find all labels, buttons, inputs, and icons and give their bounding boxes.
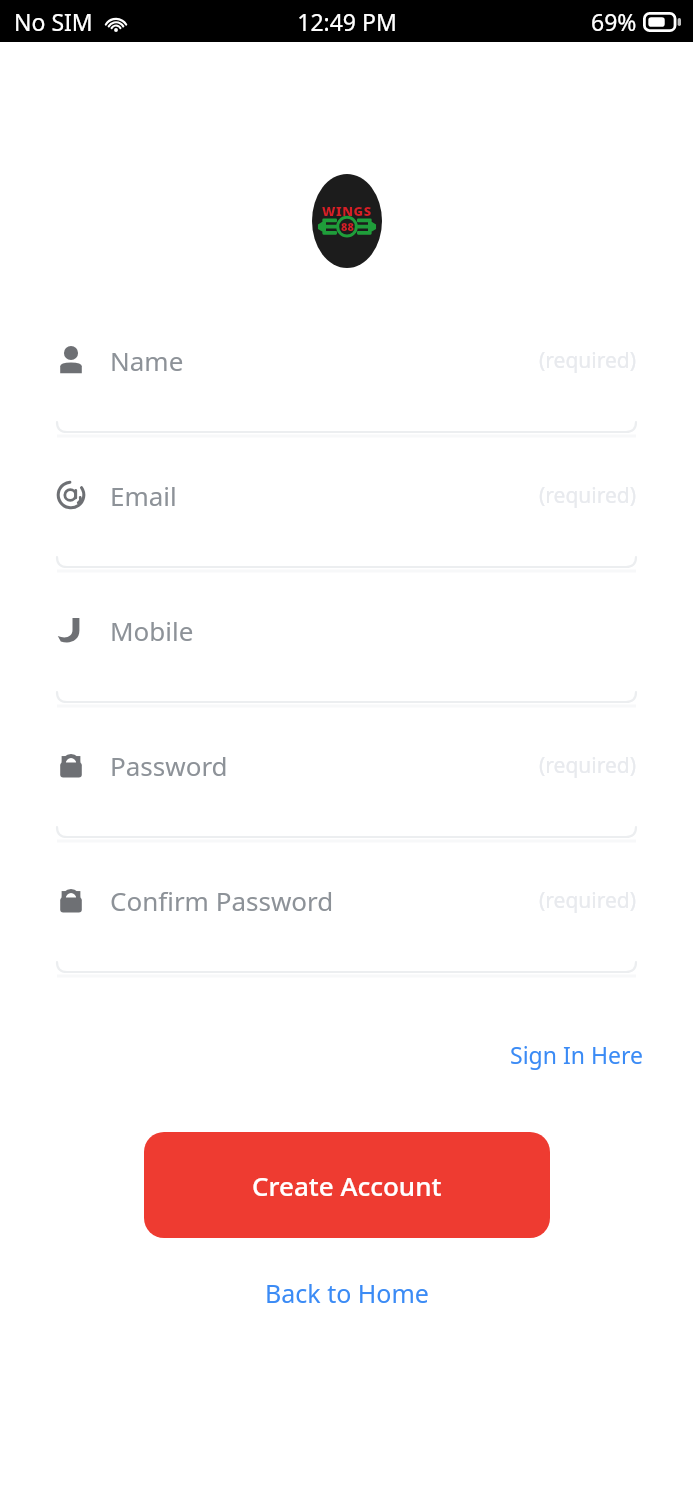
button[interactable]: Mobile (0, 600, 693, 735)
staticText: 12:49 PM (297, 6, 397, 37)
staticText: (required) (539, 751, 637, 780)
staticText: 88 (341, 219, 354, 234)
staticText: Mobile (110, 613, 194, 648)
staticText: (required) (539, 346, 637, 375)
staticText: Name (110, 343, 184, 378)
staticText: (required) (539, 481, 637, 510)
staticText: Sign In Here (510, 1039, 643, 1070)
button[interactable]: Create Account (144, 1132, 550, 1238)
button[interactable]: Password (0, 735, 693, 870)
staticText: No SIM (14, 6, 93, 37)
button[interactable]: Sign In Here (504, 1033, 649, 1076)
staticText: Confirm Password (110, 883, 334, 918)
staticText: Email (110, 478, 177, 513)
button[interactable]: Email (0, 465, 693, 600)
button[interactable]: Back to Home (257, 1270, 437, 1316)
staticText: WINGS (322, 202, 372, 220)
staticText: Back to Home (265, 1276, 429, 1310)
staticText: 69% (591, 6, 637, 37)
staticText: Create Account (252, 1168, 442, 1203)
staticText: (required) (539, 886, 637, 915)
staticText: Password (110, 748, 228, 783)
button[interactable]: Confirm Password (0, 870, 693, 1005)
button[interactable]: Name (0, 330, 693, 465)
